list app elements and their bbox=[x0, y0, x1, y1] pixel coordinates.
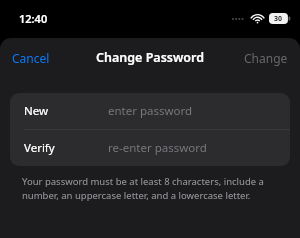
other: Wi-Fi bbox=[251, 14, 264, 24]
staticText: Change bbox=[244, 50, 288, 66]
staticText: Cancel bbox=[12, 50, 50, 66]
other: Battery 30 percent bbox=[269, 13, 291, 24]
staticText: 12:40 bbox=[19, 11, 48, 26]
staticText: 30 bbox=[274, 14, 283, 24]
staticText: re-enter password bbox=[108, 140, 207, 156]
staticText: Change Password bbox=[96, 49, 205, 66]
button[interactable]: Cancel bbox=[0, 43, 62, 73]
staticText: New bbox=[24, 103, 108, 119]
button[interactable]: New bbox=[10, 93, 290, 129]
staticText: enter password bbox=[108, 103, 193, 119]
staticText: Verify bbox=[24, 140, 108, 156]
button[interactable]: Change bbox=[232, 43, 300, 73]
staticText: Your password must be at least 8 charact… bbox=[22, 175, 278, 202]
button[interactable]: Verify bbox=[10, 130, 290, 166]
